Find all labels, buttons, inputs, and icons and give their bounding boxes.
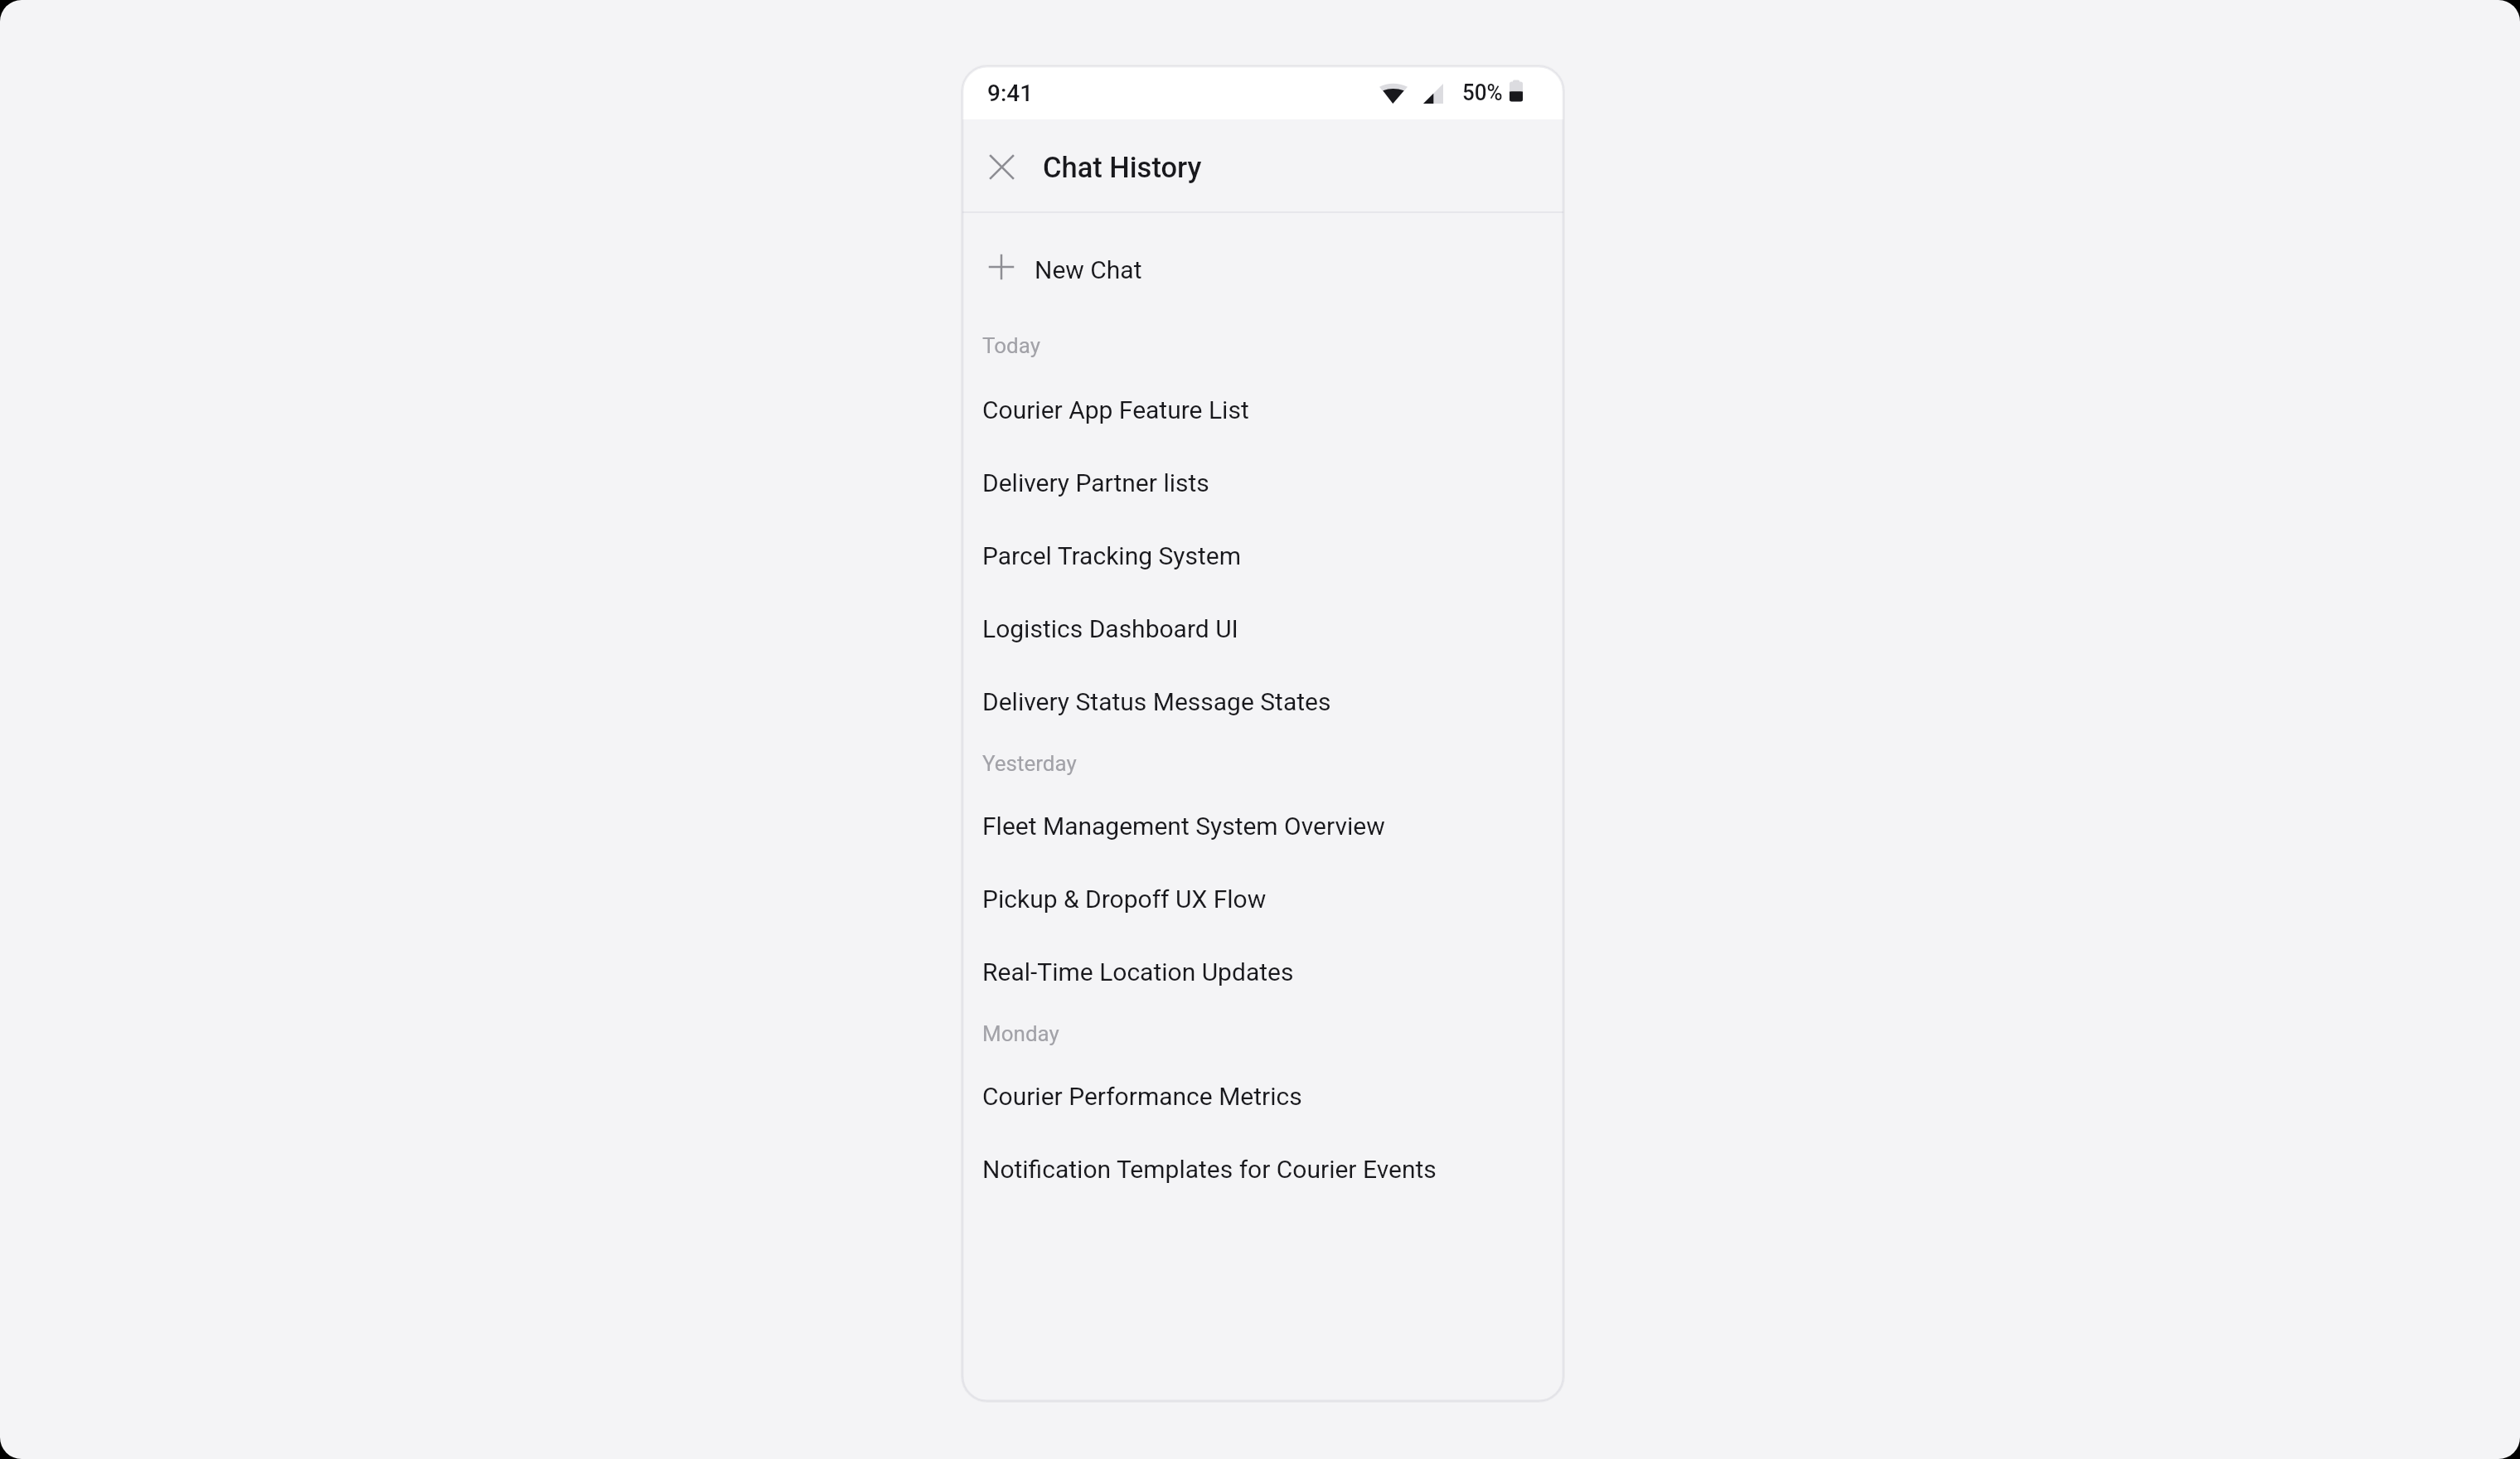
- button[interactable]: Logistics Dashboard UI: [962, 583, 1563, 656]
- staticText: Monday: [982, 1021, 1059, 1046]
- staticText: Parcel Tracking System: [982, 541, 1242, 570]
- staticText: Fleet Management System Overview: [982, 812, 1385, 841]
- staticText: Delivery Partner lists: [982, 468, 1209, 497]
- button[interactable]: Parcel Tracking System: [962, 510, 1563, 583]
- staticText: Courier App Feature List: [982, 395, 1249, 424]
- button[interactable]: Delivery Partner lists: [962, 437, 1563, 510]
- button[interactable]: Real-Time Location Updates: [962, 926, 1563, 999]
- staticText: Chat History: [1043, 151, 1202, 184]
- staticText: Delivery Status Message States: [982, 687, 1331, 716]
- button[interactable]: Courier App Feature List: [962, 364, 1563, 437]
- staticText: Logistics Dashboard UI: [982, 614, 1238, 643]
- staticText: Pickup & Dropoff UX Flow: [982, 885, 1267, 914]
- staticText: Courier Performance Metrics: [982, 1082, 1302, 1111]
- staticText: 9:41: [987, 80, 1034, 107]
- button[interactable]: Notification Templates for Courier Event…: [962, 1123, 1563, 1196]
- button[interactable]: Delivery Status Message States: [962, 656, 1563, 729]
- staticText: Real-Time Location Updates: [982, 957, 1294, 986]
- button[interactable]: Courier Performance Metrics: [962, 1050, 1563, 1123]
- staticText: 50%: [1462, 79, 1503, 106]
- staticText: Yesterday: [982, 751, 1077, 776]
- button[interactable]: New Chat: [962, 221, 1563, 312]
- staticText: Notification Templates for Courier Event…: [982, 1155, 1437, 1184]
- staticText: New Chat: [1035, 255, 1142, 284]
- button[interactable]: Close: [981, 146, 1022, 187]
- button[interactable]: Fleet Management System Overview: [962, 780, 1563, 853]
- button[interactable]: Pickup & Dropoff UX Flow: [962, 853, 1563, 926]
- staticText: Today: [982, 333, 1041, 358]
